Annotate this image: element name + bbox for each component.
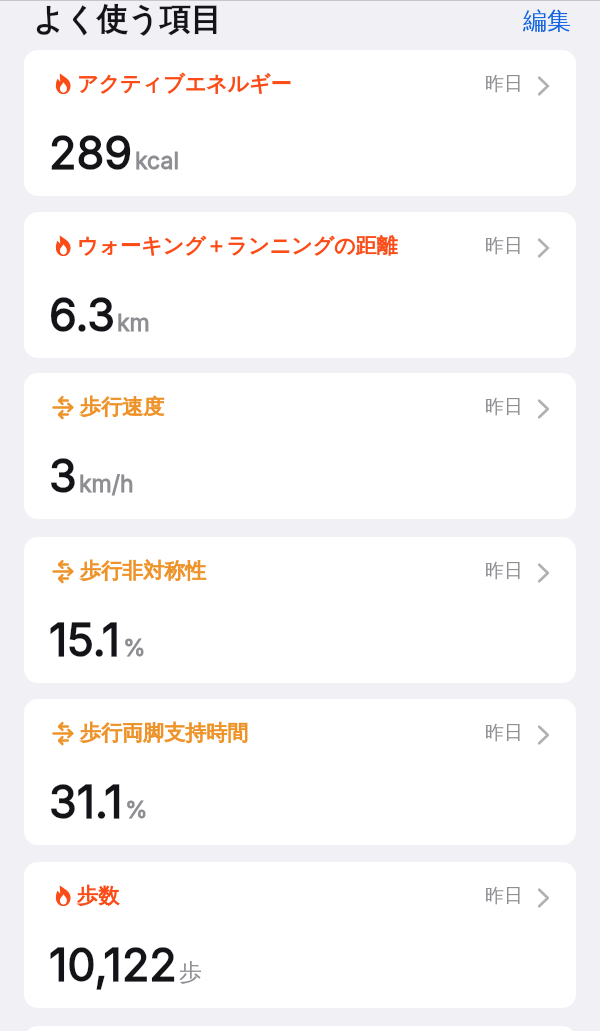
staticText: 昨日 bbox=[485, 721, 523, 745]
staticText: 歩行両脚支持時間 bbox=[80, 720, 248, 746]
staticText: アクティブエネルギー bbox=[77, 71, 292, 97]
staticText: 歩 bbox=[179, 958, 202, 987]
button[interactable]: 歩行速度 bbox=[24, 373, 576, 519]
button[interactable]: 歩行両脚支持時間 bbox=[24, 699, 576, 845]
staticText: 昨日 bbox=[485, 395, 523, 419]
staticText: 編集 bbox=[523, 6, 571, 36]
staticText: 10,122 bbox=[49, 937, 177, 991]
staticText: 昨日 bbox=[485, 234, 523, 258]
staticText: 昨日 bbox=[485, 884, 523, 908]
staticText: kcal bbox=[135, 147, 179, 175]
staticText: 歩行速度 bbox=[80, 394, 164, 420]
staticText: 6.3 bbox=[49, 287, 115, 341]
staticText: km/h bbox=[79, 470, 134, 498]
button[interactable]: 編集 bbox=[515, 2, 579, 40]
staticText: 歩数 bbox=[77, 883, 119, 909]
staticText: % bbox=[123, 634, 146, 662]
staticText: km bbox=[117, 309, 150, 337]
button[interactable]: アクティブエネルギー bbox=[24, 50, 576, 196]
staticText: 昨日 bbox=[485, 72, 523, 96]
button[interactable]: 歩行非対称性 bbox=[24, 537, 576, 683]
staticText: 歩行非対称性 bbox=[80, 558, 206, 584]
button[interactable]: 歩数 bbox=[24, 862, 576, 1008]
staticText: 31.1 bbox=[49, 774, 123, 828]
staticText: 昨日 bbox=[485, 559, 523, 583]
staticText: 3 bbox=[49, 448, 77, 502]
staticText: 289 bbox=[49, 125, 133, 179]
staticText: 15.1 bbox=[49, 612, 121, 666]
staticText: ウォーキング＋ランニングの距離 bbox=[77, 233, 398, 259]
button[interactable]: ウォーキング＋ランニングの距離 bbox=[24, 212, 576, 358]
staticText: よく使う項目 bbox=[33, 0, 222, 39]
staticText: % bbox=[125, 796, 148, 824]
